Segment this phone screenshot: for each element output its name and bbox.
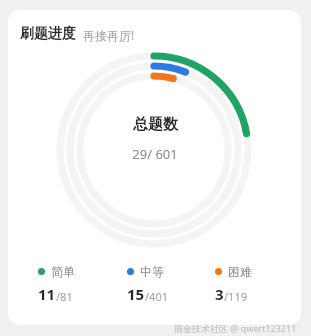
- button[interactable]: 困难: [199, 264, 287, 304]
- staticText: /119: [224, 289, 247, 304]
- staticText: 29/ 601: [132, 145, 178, 163]
- staticText: 总题数: [133, 115, 178, 134]
- staticText: 困难: [228, 264, 252, 279]
- staticText: 11: [38, 284, 56, 304]
- button[interactable]: 刷题进度: [20, 25, 135, 43]
- button[interactable]: 刷题进度: [8, 10, 301, 325]
- staticText: 掘金技术社区 @ qwert123211: [174, 322, 297, 334]
- staticText: 中等: [140, 264, 164, 279]
- staticText: 刷题进度: [20, 25, 76, 43]
- staticText: 15: [127, 284, 145, 304]
- staticText: 再接再厉!: [83, 27, 135, 43]
- button[interactable]: 中等: [111, 264, 199, 304]
- staticText: 简单: [51, 264, 75, 279]
- staticText: /81: [56, 289, 73, 304]
- button[interactable]: 简单: [22, 264, 111, 304]
- staticText: 3: [215, 284, 224, 304]
- staticText: /401: [145, 289, 168, 304]
